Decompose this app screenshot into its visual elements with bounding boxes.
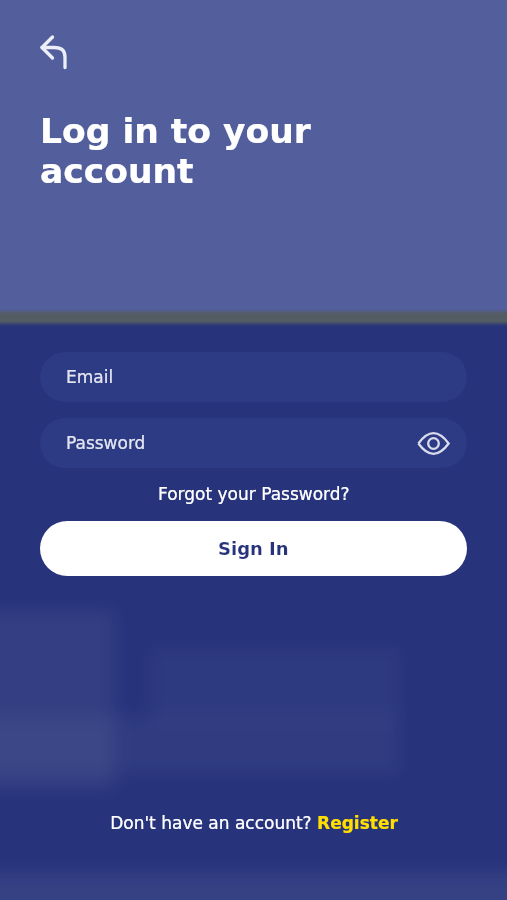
button[interactable]: Sign In <box>40 521 467 576</box>
button[interactable]: Email <box>40 352 467 402</box>
button[interactable]: Password <box>40 418 467 468</box>
staticText: Log in to your account <box>40 111 311 191</box>
staticText: Email <box>66 367 114 387</box>
button[interactable] <box>30 26 76 72</box>
button[interactable]: Forgot your Password? <box>0 484 507 504</box>
staticText: Forgot your Password? <box>158 484 350 504</box>
button[interactable]: Don't have an account? Register <box>0 813 507 833</box>
staticText: Password <box>66 433 146 453</box>
staticText: Sign In <box>218 538 289 559</box>
staticText: Don't have an account? Register <box>110 813 398 833</box>
